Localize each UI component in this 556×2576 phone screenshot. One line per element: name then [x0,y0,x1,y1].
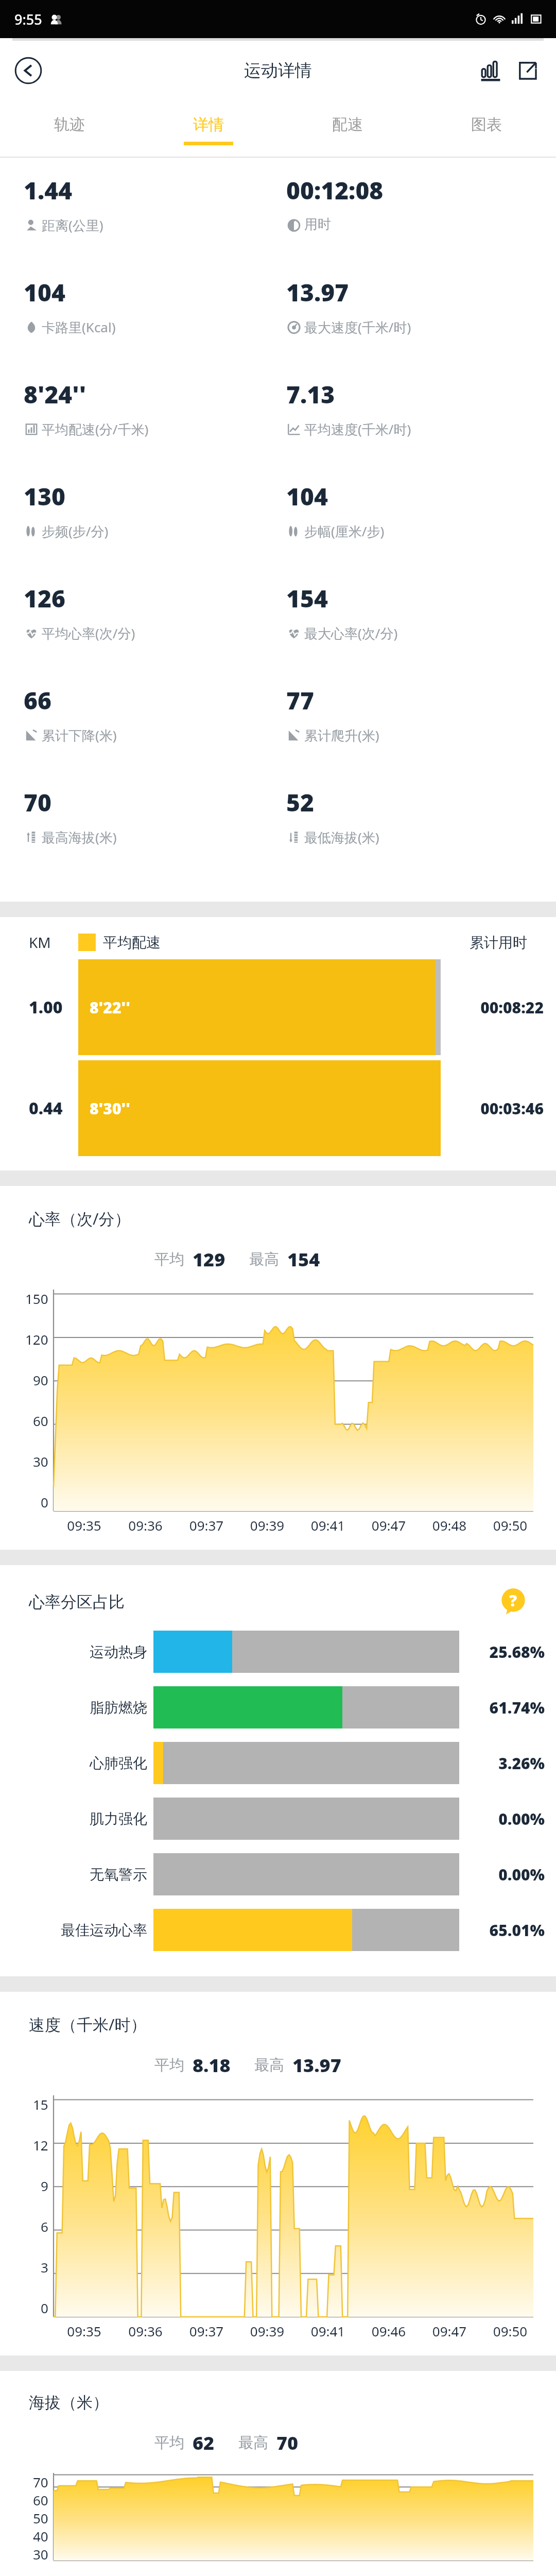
staticText: 60 [33,2491,48,2509]
staticText: 累计用时 [470,934,527,952]
button[interactable]: 心肺强化 [0,1738,556,1788]
staticText: 60 [33,1412,48,1430]
staticText: 09:50 [480,1516,541,1534]
staticText: 129 [193,1247,225,1272]
staticText: 00:03:46 [450,1098,544,1119]
button[interactable]: 图表 [417,103,556,157]
staticText: 平均 [154,1250,184,1269]
staticText: 104 [286,480,328,513]
staticText: 0.00% [467,1808,545,1829]
button[interactable]: Help [499,1588,527,1616]
staticText: 09:47 [419,2322,480,2340]
staticText: 平均速度(千米/时) [304,420,411,438]
button[interactable]: Back [11,54,45,88]
staticText: 09:36 [115,2322,176,2340]
staticText: 8'30'' [90,1098,131,1119]
staticText: 7.13 [286,378,335,411]
staticText: 配速 [332,115,363,134]
staticText: 运动详情 [244,60,312,81]
staticText: 0 [41,2299,48,2317]
staticText: 09:39 [237,1516,298,1534]
staticText: 70 [33,2473,48,2491]
button[interactable]: 脂肪燃烧 [0,1683,556,1732]
staticText: 130 [24,480,65,513]
staticText: 12 [33,2136,48,2154]
staticText: 无氧警示 [15,1866,147,1884]
staticText: 09:35 [54,2322,115,2340]
staticText: 00:08:22 [450,997,544,1018]
staticText: 25.68% [467,1641,545,1663]
staticText: 09:41 [298,1516,358,1534]
button[interactable]: 配速 [278,103,417,157]
staticText: 104 [24,276,65,309]
staticText: 平均配速 [103,934,161,952]
staticText: 30 [33,2545,48,2561]
button[interactable]: 1.00 [0,959,556,1055]
staticText: 详情 [193,115,224,134]
staticText: 09:39 [237,2322,298,2340]
staticText: 累计下降(米) [42,726,117,744]
staticText: 平均 [154,2056,184,2075]
staticText: 62 [193,2430,215,2455]
staticText: 距离(公里) [42,216,103,234]
staticText: 最佳运动心率 [15,1921,147,1939]
button[interactable]: Share [512,55,544,87]
staticText: 09:48 [419,1516,480,1534]
staticText: 运动热身 [15,1643,147,1661]
staticText: 09:47 [358,1516,419,1534]
staticText: 13.97 [286,276,349,309]
staticText: 09:41 [298,2322,358,2340]
staticText: 3 [41,2258,48,2276]
staticText: 累计爬升(米) [304,726,379,744]
button[interactable]: Charts [475,55,507,87]
button[interactable]: 无氧警示 [0,1850,556,1899]
staticText: 最低海拔(米) [304,828,379,846]
staticText: 00:12:08 [286,174,384,207]
staticText: 70 [24,786,51,819]
staticText: 90 [33,1371,48,1389]
staticText: 肌力强化 [15,1810,147,1828]
staticText: 0 [41,1493,48,1511]
staticText: 6 [41,2217,48,2235]
staticText: KM [29,933,78,952]
staticText: 9:55 [14,10,42,29]
button[interactable]: 最佳运动心率 [0,1905,556,1955]
staticText: 70 [276,2430,299,2455]
staticText: 8.18 [193,2053,231,2078]
staticText: 3.26% [467,1753,545,1774]
staticText: 心率分区占比 [29,1592,125,1612]
staticText: 09:37 [176,1516,237,1534]
staticText: 09:37 [176,2322,237,2340]
staticText: 步频(步/分) [42,522,109,540]
staticText: 150 [25,1290,48,1308]
staticText: 最高 [254,2056,284,2075]
staticText: 脂肪燃烧 [15,1699,147,1717]
staticText: 30 [33,1452,48,1470]
button[interactable]: 运动热身 [0,1627,556,1676]
button[interactable]: 详情 [139,103,278,157]
staticText: 09:36 [115,1516,176,1534]
staticText: 50 [33,2509,48,2527]
staticText: 最大速度(千米/时) [304,318,411,336]
staticText: 速度（千米/时） [29,2013,147,2035]
staticText: 最高 [249,1250,279,1269]
staticText: 13.97 [292,2053,341,2078]
staticText: 平均心率(次/分) [42,624,135,642]
staticText: 平均配速(分/千米) [42,420,149,438]
staticText: 图表 [471,115,502,134]
staticText: 轨迹 [54,115,85,134]
staticText: 海拔（米） [29,2393,109,2413]
staticText: 65.01% [467,1920,545,1941]
staticText: 心率（次/分） [29,1208,131,1229]
staticText: ? [509,1590,517,1611]
button[interactable]: 0.44 [0,1060,556,1156]
staticText: 用时 [304,216,331,233]
staticText: 154 [286,582,328,615]
button[interactable]: 轨迹 [0,103,139,157]
button[interactable]: 肌力强化 [0,1794,556,1843]
staticText: 126 [24,582,65,615]
staticText: 09:46 [358,2322,419,2340]
staticText: 09:50 [480,2322,541,2340]
staticText: 61.74% [467,1697,545,1718]
staticText: 8'24'' [24,378,86,411]
